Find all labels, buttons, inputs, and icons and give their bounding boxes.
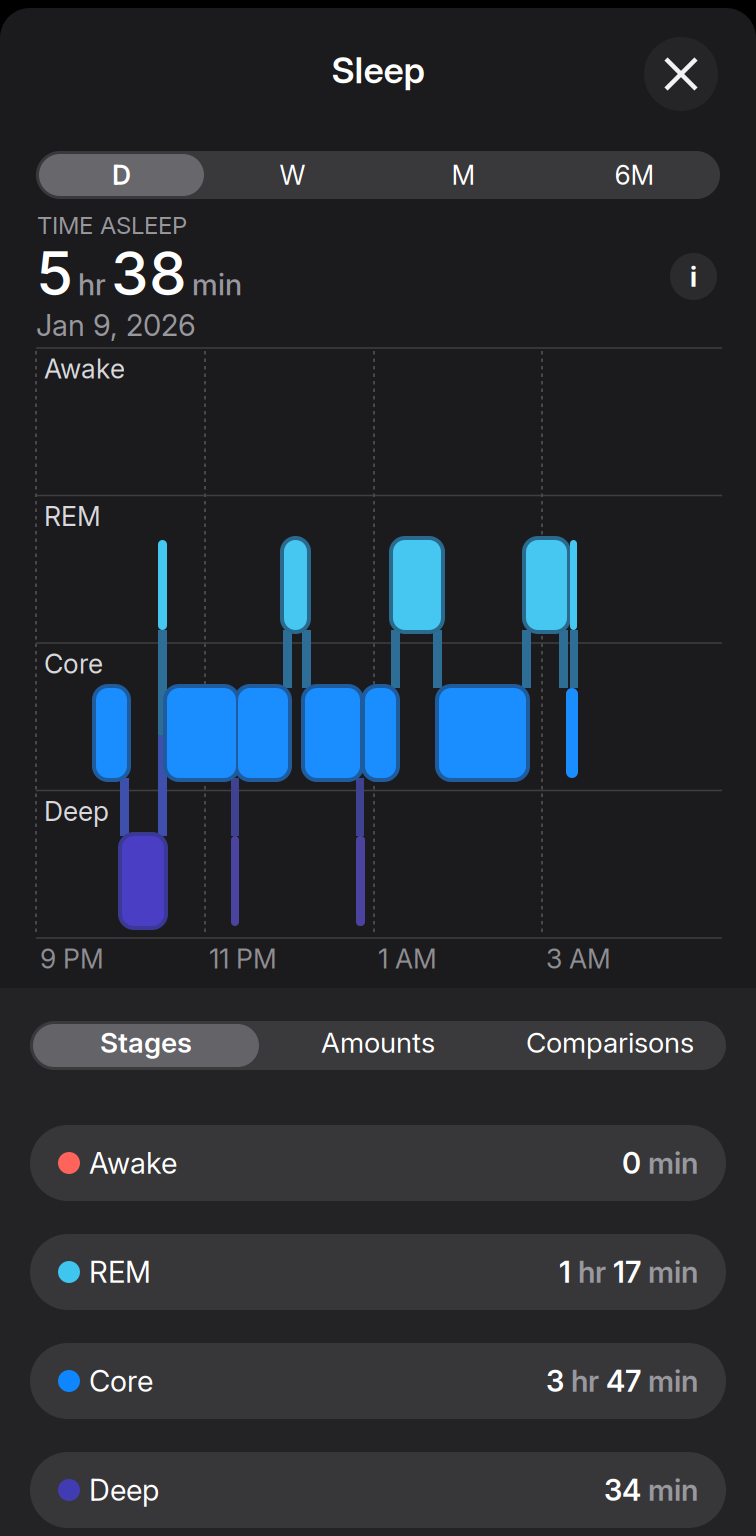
staticText: D — [112, 159, 131, 191]
staticText: min — [648, 1255, 698, 1289]
staticText: min — [648, 1473, 698, 1507]
staticText: 6M — [614, 159, 654, 191]
staticText: M — [451, 159, 475, 191]
staticText: Deep — [89, 1473, 159, 1507]
staticText: Deep — [44, 795, 109, 827]
staticText: hr — [571, 1364, 599, 1398]
staticText: Jan 9, 2026 — [36, 308, 196, 343]
staticText: Stages — [100, 1026, 192, 1059]
button[interactable]: REM — [30, 1234, 726, 1310]
button[interactable]: Amounts — [262, 1021, 494, 1070]
staticText: W — [279, 159, 305, 191]
staticText: min — [192, 267, 242, 302]
staticText: hr — [578, 1255, 606, 1289]
staticText: Core — [89, 1364, 153, 1398]
button[interactable]: 6M — [549, 151, 720, 199]
button[interactable]: Close — [644, 37, 718, 111]
staticText: Awake — [89, 1146, 177, 1180]
staticText: i — [689, 258, 697, 295]
staticText: 3 — [546, 1364, 564, 1398]
staticText: 34 — [604, 1473, 641, 1507]
staticText: min — [648, 1364, 698, 1398]
button[interactable]: Stages — [30, 1021, 262, 1070]
button[interactable]: D — [36, 151, 207, 199]
button[interactable]: Deep — [30, 1452, 726, 1528]
staticText: 38 — [111, 238, 187, 309]
button[interactable]: About Time Asleep — [670, 253, 717, 300]
button[interactable]: W — [207, 151, 378, 199]
staticText: Core — [44, 648, 103, 679]
staticText: 17 — [613, 1255, 641, 1289]
staticText: 47 — [606, 1364, 641, 1398]
staticText: 0 — [622, 1146, 641, 1180]
staticText: 1 — [559, 1255, 571, 1289]
staticText: Comparisons — [526, 1026, 694, 1059]
button[interactable]: Comparisons — [494, 1021, 726, 1070]
staticText: Sleep — [331, 49, 424, 91]
staticText: 1 AM — [378, 943, 437, 974]
staticText: min — [648, 1146, 698, 1180]
staticText: REM — [89, 1255, 151, 1289]
staticText: 3 AM — [546, 943, 611, 974]
button[interactable]: Awake — [30, 1125, 726, 1201]
staticText: TIME ASLEEP — [37, 211, 187, 239]
staticText: 5 — [36, 238, 73, 309]
staticText: Amounts — [321, 1026, 435, 1059]
button[interactable]: M — [378, 151, 549, 199]
staticText: 9 PM — [40, 943, 104, 974]
staticText: Awake — [44, 353, 125, 384]
staticText: hr — [78, 267, 106, 302]
staticText: REM — [44, 500, 101, 532]
staticText: 11 PM — [209, 943, 277, 974]
button[interactable]: Core — [30, 1343, 726, 1419]
